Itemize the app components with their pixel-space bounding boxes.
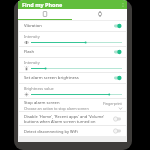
staticText: Brightness value	[24, 86, 54, 91]
button[interactable]: Intensity	[19, 58, 126, 72]
button[interactable]: Intensity	[19, 32, 126, 46]
staticText: Vibration	[24, 23, 113, 29]
button[interactable]: More options	[118, 0, 127, 9]
staticText: Set alarm screen brightness	[24, 75, 113, 81]
button[interactable]: Phone tab	[18, 9, 72, 19]
staticText: Fingerprint	[103, 101, 122, 106]
button[interactable]: Flash	[19, 47, 126, 57]
staticText: buttons when Alarm screen turned on	[24, 119, 96, 124]
staticText: Flash	[24, 49, 113, 55]
button[interactable]: Detect disconnecting by WiFi	[19, 126, 126, 136]
staticText: Intensity	[24, 34, 40, 39]
button[interactable]: Stop alarm screen	[19, 99, 126, 111]
staticText: Stop alarm screen	[24, 100, 60, 106]
button[interactable]: Disable 'Home', 'Recent apps' and 'Volum…	[19, 112, 126, 125]
staticText: Detect disconnecting by WiFi	[24, 129, 78, 134]
button[interactable]: Brightness value	[19, 84, 126, 98]
button[interactable]: Set alarm screen brightness	[19, 73, 126, 83]
staticText: Intensity	[24, 60, 40, 65]
staticText: Find my Phone	[22, 1, 63, 8]
staticText: Choose an action to stop alarm screen	[24, 106, 89, 111]
button[interactable]: Watch tab	[72, 9, 127, 19]
staticText: Disable 'Home', 'Recent apps' and 'Volum…	[24, 114, 105, 119]
button[interactable]: Vibration	[19, 21, 126, 31]
